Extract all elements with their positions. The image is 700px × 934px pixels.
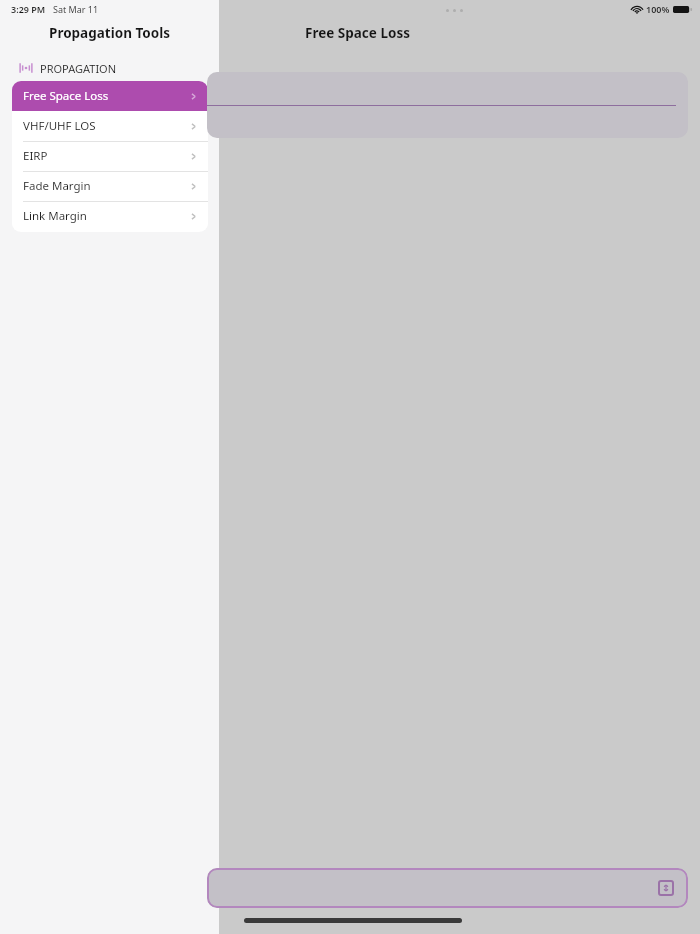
button[interactable]: Resize (658, 880, 674, 896)
button[interactable]: Window controls (441, 6, 467, 14)
button[interactable]: VHF/UHF LOS (12, 111, 208, 141)
staticText: Free Space Loss (23, 88, 109, 104)
staticText: Link Margin (23, 208, 87, 224)
button[interactable]: Fade Margin (12, 171, 208, 201)
button[interactable]: Free Space Loss (12, 81, 208, 111)
staticText: VHF/UHF LOS (23, 118, 96, 134)
button[interactable]: Link Margin (12, 201, 208, 231)
staticText: Fade Margin (23, 178, 91, 194)
button[interactable] (207, 72, 688, 138)
staticText: 100% (646, 3, 670, 15)
staticText: Free Space Loss (305, 24, 410, 42)
staticText: 3:29 PM (11, 3, 46, 15)
button[interactable]: EIRP (12, 141, 208, 171)
staticText: EIRP (23, 148, 48, 164)
button[interactable]: Resize (207, 868, 688, 908)
staticText: Propagation Tools (49, 24, 170, 42)
staticText: Sat Mar 11 (53, 3, 99, 15)
staticText: PROPAGATION (40, 61, 117, 76)
